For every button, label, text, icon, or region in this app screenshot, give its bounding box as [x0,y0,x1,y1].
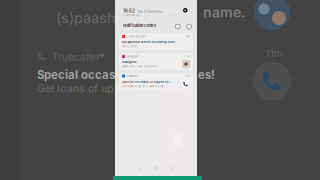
button[interactable]: Instagram [119,53,193,70]
button[interactable]: Settings [186,23,192,30]
button[interactable]: Screen recorder [119,33,193,50]
staticText: Special occasion [37,68,132,82]
staticText: Screen recorder [127,35,145,38]
staticText: now [186,35,190,38]
staticText: 12m [185,74,190,78]
staticText: Get loans of up to [37,82,126,95]
staticText: • • • [169,13,177,16]
staticText: 11m [266,48,282,59]
staticText: Truecaller [52,51,100,63]
staticText: Special occasion or urgent expense? [122,80,173,84]
staticText: Background screen recording is on [122,40,175,44]
button[interactable]: History [175,24,181,29]
staticText: es! [198,68,215,82]
staticText: Tap to stop [122,45,137,48]
staticText: suhani_0106 liked your photo [122,65,158,68]
staticText: Truecaller [127,74,137,78]
staticText: Instagram [127,55,138,58]
staticText: The 5 Elements [137,10,162,13]
staticText: (s)paashu_bhat [56,9,162,27]
staticText: A moment ago [123,13,141,17]
button[interactable]: Truecaller [119,73,193,90]
staticText: Get loans of up to 5 lakhs in a tap [122,85,164,88]
staticText: Instagram [122,60,136,64]
staticText: Notification Centre [123,23,156,28]
staticText: name. [203,4,245,21]
staticText: 16:52 [123,8,135,13]
staticText: 4m [186,55,190,58]
